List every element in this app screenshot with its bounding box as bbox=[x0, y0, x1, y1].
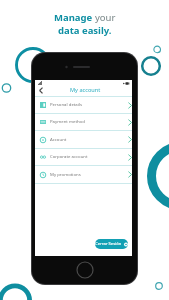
staticText: Manage bbox=[54, 11, 95, 24]
staticText: Corporate account bbox=[50, 153, 128, 159]
staticText: Account bbox=[50, 136, 128, 142]
staticText: Personal details bbox=[50, 101, 128, 107]
staticText: My account bbox=[70, 86, 101, 94]
staticText: data easily. bbox=[58, 24, 112, 37]
staticText: your bbox=[95, 11, 116, 24]
button[interactable]: Personal details bbox=[35, 96, 132, 113]
button[interactable]: My promotions bbox=[35, 165, 132, 183]
button[interactable]: Corporate account bbox=[35, 148, 132, 165]
button[interactable]: Account bbox=[35, 130, 132, 148]
staticText: Cerrar Sesión bbox=[95, 241, 122, 247]
staticText: Payment method bbox=[50, 118, 128, 124]
button[interactable]: Payment method bbox=[35, 113, 132, 130]
button[interactable]: Cerrar Sesión bbox=[95, 239, 128, 249]
staticText: My promotions bbox=[50, 171, 128, 177]
button[interactable]: Back bbox=[36, 86, 46, 96]
